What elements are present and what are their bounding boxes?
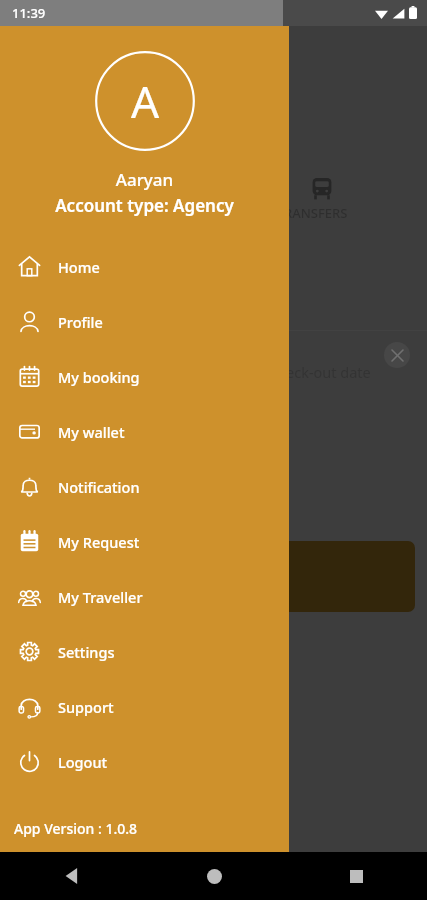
- button[interactable]: Back: [0, 852, 143, 900]
- staticText: A: [131, 71, 160, 131]
- staticText: My Traveller: [58, 587, 143, 607]
- button[interactable]: My booking: [0, 349, 289, 404]
- button[interactable]: My wallet: [0, 404, 289, 459]
- staticText: Profile: [58, 312, 103, 332]
- staticText: App Version : 1.0.8: [14, 819, 138, 838]
- staticText: Settings: [58, 642, 115, 662]
- staticText: Home: [58, 257, 100, 277]
- staticText: Account type: Agency: [0, 194, 289, 217]
- staticText: My wallet: [58, 422, 125, 442]
- staticText: My booking: [58, 367, 140, 387]
- button[interactable]: Home: [0, 239, 289, 294]
- button[interactable]: My Traveller: [0, 569, 289, 624]
- button[interactable]: Clear check-out date: [384, 342, 410, 368]
- staticText: My Request: [58, 532, 140, 552]
- staticText: 11:39: [12, 4, 46, 22]
- staticText: RANSFERS: [284, 204, 348, 222]
- staticText: Notification: [58, 477, 140, 497]
- staticText: Aaryan: [0, 168, 289, 191]
- staticText: Logout: [58, 752, 108, 772]
- staticText: Support: [58, 697, 114, 717]
- button[interactable]: Search: [0, 541, 415, 612]
- button[interactable]: Notification: [0, 459, 289, 514]
- staticText: eck-out date: [286, 362, 371, 382]
- button[interactable]: Home: [143, 852, 285, 900]
- button[interactable]: Settings: [0, 624, 289, 679]
- button[interactable]: Profile: [0, 294, 289, 349]
- button[interactable]: Support: [0, 679, 289, 734]
- button[interactable]: Logout: [0, 734, 289, 789]
- button[interactable]: My Request: [0, 514, 289, 569]
- button[interactable]: Recent apps: [285, 852, 427, 900]
